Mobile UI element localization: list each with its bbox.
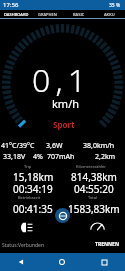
staticText: 41°C/39°C: [1, 141, 35, 151]
staticText: 1583,83km: [68, 202, 120, 216]
staticText: AKKU: [104, 12, 115, 17]
staticText: 0,1: [32, 58, 92, 102]
staticText: BASIC: [73, 12, 85, 17]
staticText: 33,18V: [3, 152, 26, 162]
staticText: km/h: [52, 96, 80, 111]
staticText: 3,6W: [46, 141, 63, 151]
button[interactable]: BASIC: [63, 10, 94, 18]
staticText: Kilometerzähler: [76, 164, 106, 169]
staticText: 00:41:35: [13, 202, 53, 216]
button[interactable]: Home: [41, 253, 83, 271]
staticText: 707mAh: [47, 152, 75, 162]
button[interactable]: Back: [0, 253, 41, 271]
button[interactable]: TRENNEN: [94, 240, 120, 249]
staticText: GRAPHEN: [38, 12, 57, 17]
staticText: 17:56: [3, 1, 19, 9]
button[interactable]: Recents: [83, 253, 125, 271]
staticText: 4%: [33, 152, 43, 162]
button[interactable]: Tacho: [88, 218, 106, 236]
staticText: TRENNEN: [95, 241, 119, 248]
button[interactable]: AKKU: [94, 10, 125, 18]
staticText: 15,18km: [13, 170, 54, 184]
staticText: Sport: [53, 119, 75, 130]
staticText: 2,2km: [95, 152, 116, 162]
staticText: Total: [88, 195, 98, 200]
button[interactable]: Licht: [17, 218, 35, 236]
button[interactable]: GRAPHEN: [32, 10, 63, 18]
staticText: 35 %: [109, 2, 121, 9]
button[interactable]: Verbinden: [55, 208, 70, 223]
staticText: Betriebszeit: [18, 195, 41, 200]
staticText: 814,38km: [71, 170, 117, 184]
staticText: 38,0km/h: [83, 141, 115, 151]
staticText: 04:55:20: [74, 182, 114, 196]
button[interactable]: DASHBOARD: [0, 10, 32, 18]
staticText: Trip: [24, 164, 32, 169]
staticText: DASHBOARD: [4, 12, 29, 17]
staticText: 00:34:19: [13, 182, 53, 196]
staticText: Status:Verbunden: [2, 242, 45, 249]
